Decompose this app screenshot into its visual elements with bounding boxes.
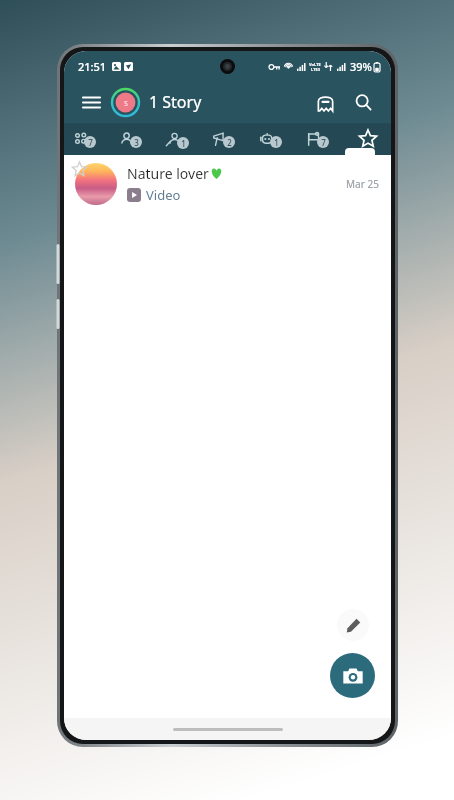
staticText: LTE3	[311, 67, 320, 72]
button[interactable]: Flags	[297, 123, 344, 155]
button[interactable]: Bots	[250, 123, 297, 155]
button[interactable]: Search	[347, 86, 379, 118]
staticText: 21:51	[78, 59, 107, 74]
button[interactable]: Profile	[112, 89, 139, 116]
button[interactable]: Groups	[64, 123, 110, 155]
staticText: 1	[274, 137, 279, 148]
staticText: 3	[134, 137, 139, 148]
staticText: VoLTE	[309, 62, 321, 67]
button[interactable]: Add friend	[156, 123, 203, 155]
button[interactable]: Friends	[110, 123, 156, 155]
button[interactable]: Camera	[330, 653, 375, 698]
staticText: 1 Story	[149, 91, 202, 113]
button[interactable]: Nature lover	[64, 155, 391, 213]
button[interactable]: Ghost mode	[309, 86, 341, 118]
staticText: 2	[227, 137, 232, 148]
staticText: Video	[146, 186, 181, 204]
staticText: 7	[321, 137, 326, 148]
staticText: 39%	[350, 59, 372, 74]
staticText: Mar 25	[346, 177, 379, 191]
staticText: Nature lover	[127, 164, 209, 183]
button[interactable]: Announcements	[203, 123, 250, 155]
button[interactable]: New chat	[337, 609, 369, 641]
staticText: 1	[181, 138, 186, 149]
button[interactable]: Stories	[344, 123, 391, 155]
button[interactable]: Menu	[76, 87, 106, 117]
staticText: s	[124, 97, 128, 108]
staticText: 7	[88, 137, 93, 148]
